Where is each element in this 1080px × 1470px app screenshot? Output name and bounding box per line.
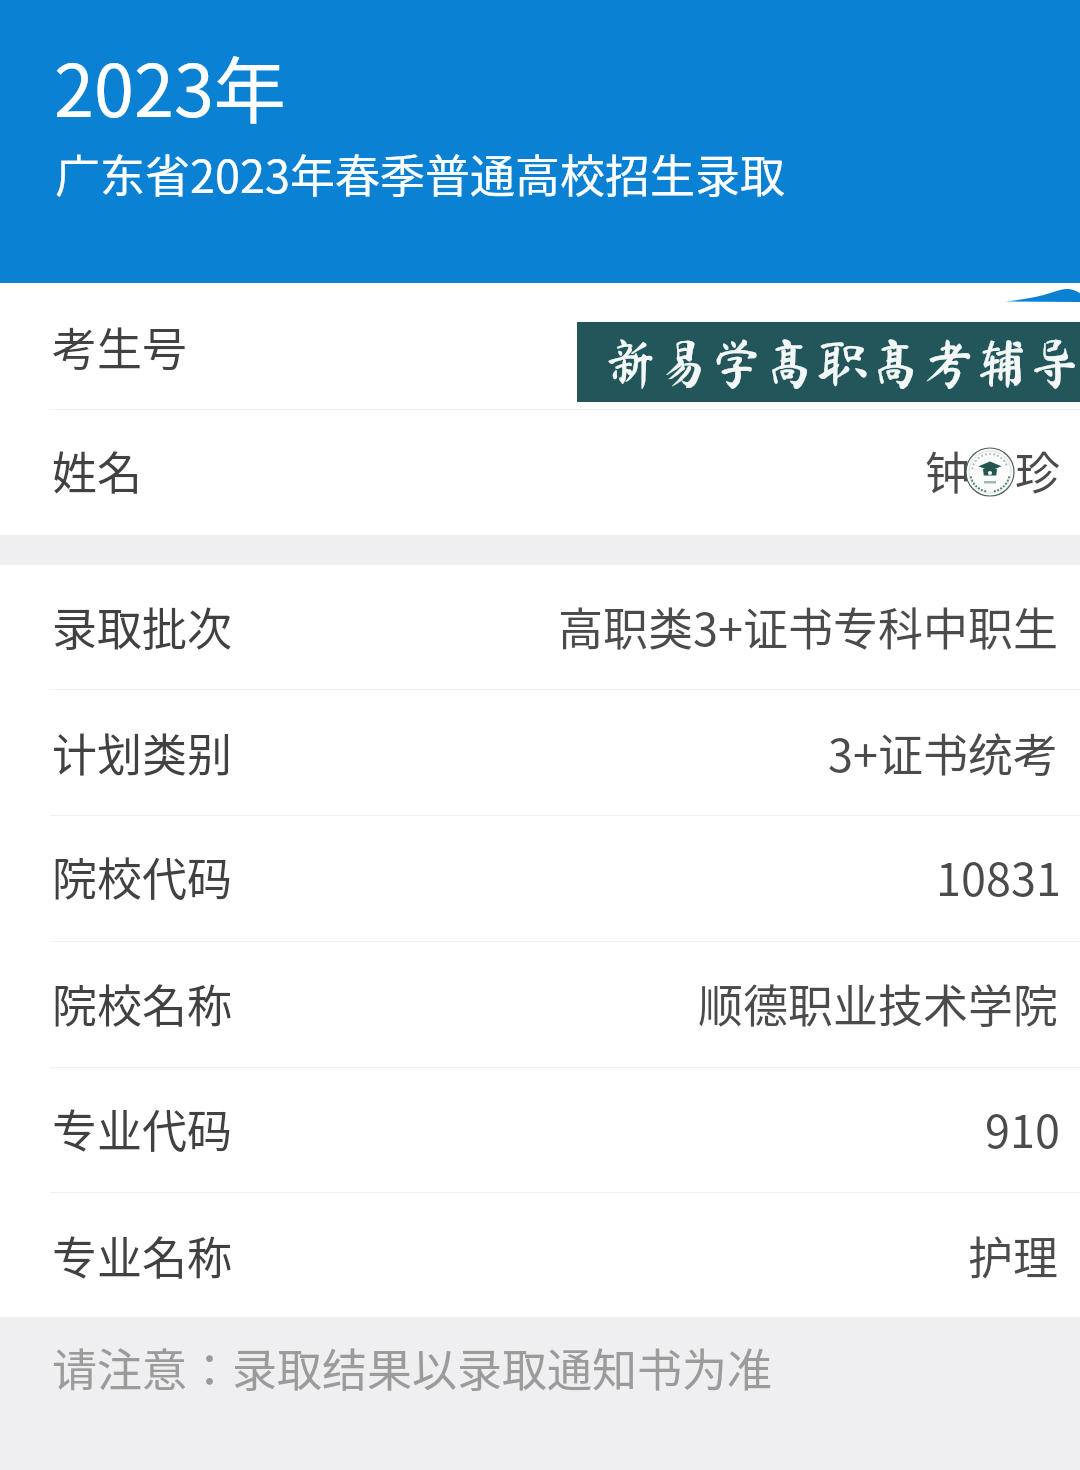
button[interactable]: 考生号 — [0, 283, 1080, 410]
staticText: 院校名称 — [52, 971, 233, 1036]
staticText: 请注意：录取结果以录取通知书为准 — [52, 1335, 773, 1400]
staticText: 广东省2023年春季普通高校招生录取 — [55, 141, 785, 206]
staticText: 高职类3+证书专科中职生 — [558, 594, 1058, 659]
staticText: 护理 — [967, 1223, 1058, 1288]
staticText: 计划类别 — [52, 720, 233, 785]
staticText: 顺德职业技术学院 — [697, 971, 1058, 1036]
staticText: 考生号 — [52, 314, 188, 379]
button[interactable]: 计划类别 — [0, 690, 1080, 816]
staticText: 专业名称 — [52, 1223, 233, 1288]
staticText: 钟 珍 — [924, 438, 1060, 503]
staticText: 新易学高职高考辅导 — [604, 336, 1080, 389]
button[interactable]: 录取批次 — [0, 565, 1080, 690]
staticText: 910 — [985, 1096, 1060, 1161]
button[interactable]: 院校代码 — [0, 816, 1080, 942]
staticText: 10831 — [936, 844, 1061, 909]
button[interactable]: 姓名 — [0, 410, 1080, 535]
button[interactable]: 专业代码 — [0, 1068, 1080, 1193]
staticText: 2023年 — [54, 33, 286, 137]
button[interactable]: 2023年 — [0, 0, 1080, 283]
button[interactable]: 专业名称 — [0, 1193, 1080, 1317]
staticText: 院校代码 — [52, 844, 233, 909]
staticText: 专业代码 — [52, 1096, 233, 1161]
button[interactable]: 院校名称 — [0, 942, 1080, 1068]
staticText: 3+证书统考 — [828, 720, 1058, 785]
button[interactable]: 新易学高职高考辅导 watermark — [577, 322, 1080, 402]
staticText: 录取批次 — [52, 594, 233, 659]
staticText: 姓名 — [52, 438, 143, 503]
